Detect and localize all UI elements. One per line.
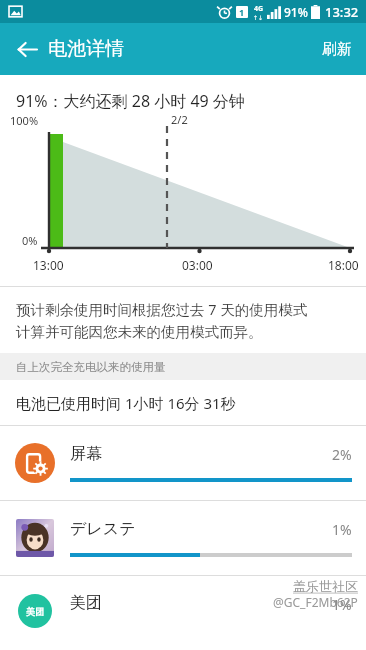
- staticText: 13:32: [325, 3, 359, 21]
- staticText: 美团: [26, 606, 44, 617]
- staticText: 91%：大约还剩 28 小时 49 分钟: [16, 90, 245, 112]
- staticText: 1%: [332, 595, 352, 614]
- button[interactable]: Back: [6, 28, 48, 70]
- staticText: 91%: [284, 4, 308, 20]
- staticText: 美团: [70, 593, 102, 613]
- staticText: 1%: [332, 520, 352, 539]
- staticText: 自上次完全充电以来的使用量: [16, 360, 166, 374]
- staticText: 100%: [10, 113, 39, 128]
- staticText: 刷新: [322, 40, 352, 59]
- button[interactable]: 电池已使用时间 1小时 16分 31秒: [0, 380, 366, 425]
- button[interactable]: 屏幕: [0, 426, 366, 500]
- staticText: 18:00: [328, 257, 359, 273]
- button[interactable]: デレステ: [0, 501, 366, 575]
- staticText: 1: [239, 6, 245, 18]
- staticText: 03:00: [182, 257, 213, 273]
- staticText: 盖乐世社区: [293, 578, 358, 594]
- staticText: 0%: [22, 233, 38, 248]
- staticText: 电池详情: [48, 37, 124, 61]
- staticText: 电池已使用时间 1小时 16分 31秒: [16, 393, 236, 413]
- staticText: @GC_F2Mb62P: [273, 594, 358, 610]
- staticText: 2%: [332, 445, 352, 464]
- staticText: 4G: [254, 4, 264, 14]
- staticText: 屏幕: [70, 444, 332, 464]
- staticText: デレステ: [70, 519, 332, 539]
- staticText: 13:00: [33, 257, 64, 273]
- staticText: ↑↓: [253, 14, 264, 21]
- staticText: 2/2: [171, 112, 188, 127]
- staticText: 预计剩余使用时间根据您过去 7 天的使用模式 计算并可能因您未来的使用模式而异。: [16, 299, 308, 341]
- button[interactable]: 刷新: [308, 28, 366, 71]
- button[interactable]: 美团: [0, 576, 366, 636]
